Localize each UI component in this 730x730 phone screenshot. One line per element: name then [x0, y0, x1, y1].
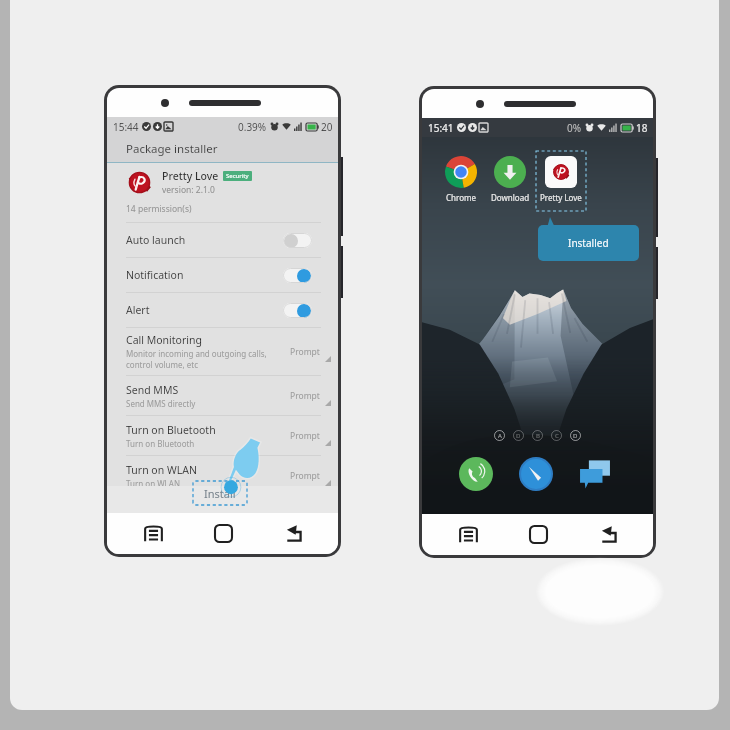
staticText: Prompt [290, 346, 320, 358]
staticText: C [555, 432, 559, 440]
staticText: Call Monitoring [126, 333, 202, 347]
staticText: Send MMS directly [126, 398, 196, 409]
button[interactable]: Browser [519, 457, 553, 491]
staticText: Monitor incoming and outgoing calls, [126, 348, 267, 359]
staticText: Pretty Love [540, 192, 582, 203]
staticText: D [516, 432, 521, 440]
staticText: Turn on WLAN [126, 463, 197, 477]
button[interactable]: Menu [454, 520, 482, 548]
staticText: Turn on Bluetooth [126, 438, 195, 449]
staticText: Turn on Bluetooth [126, 423, 216, 437]
staticText: A [498, 432, 502, 440]
button[interactable]: Chrome [436, 151, 486, 211]
staticText: 14 permission(s) [126, 203, 192, 215]
button[interactable]: Messaging [578, 457, 612, 491]
button[interactable]: Menu [139, 519, 167, 547]
staticText: Download [491, 192, 530, 203]
staticText: Package installer [126, 141, 218, 157]
button[interactable]: Call Monitoring [107, 328, 338, 375]
staticText: Security [226, 172, 249, 180]
button[interactable]: Back [280, 519, 308, 547]
staticText: 0.39% [238, 120, 267, 134]
button[interactable]: Turn on WLAN [107, 456, 338, 495]
staticText: Chrome [446, 192, 476, 203]
staticText: Pretty Love [162, 169, 219, 183]
button[interactable]: Notification [107, 258, 338, 292]
staticText: Install [204, 486, 236, 501]
staticText: version: 2.1.0 [162, 184, 215, 196]
button[interactable]: Pretty Love [536, 151, 586, 211]
button[interactable]: Turn on Bluetooth [107, 416, 338, 455]
staticText: Turn on WLAN [126, 478, 181, 489]
staticText: Send MMS [126, 383, 179, 397]
button[interactable]: Back [595, 520, 623, 548]
staticText: 20 [321, 120, 333, 134]
button[interactable]: Alert [107, 293, 338, 327]
staticText: D [573, 432, 578, 440]
button[interactable]: Home [209, 519, 237, 547]
staticText: B [536, 432, 540, 440]
staticText: Notification [126, 268, 184, 282]
staticText: 18 [636, 121, 648, 135]
staticText: Auto launch [126, 233, 186, 247]
button[interactable]: Phone [459, 457, 493, 491]
button[interactable]: Home [524, 520, 552, 548]
staticText: Prompt [290, 390, 320, 402]
button[interactable]: Download [485, 151, 535, 211]
button[interactable]: Install [193, 481, 247, 505]
staticText: Alert [126, 303, 150, 317]
staticText: 0% [567, 121, 582, 135]
staticText: Installed [568, 236, 609, 250]
button[interactable]: Auto launch [107, 223, 338, 257]
button[interactable]: Send MMS [107, 376, 338, 415]
staticText: Prompt [290, 430, 320, 442]
staticText: Prompt [290, 470, 320, 482]
staticText: control volume, etc [126, 359, 199, 370]
staticText: 15:44 [113, 120, 139, 134]
staticText: 15:41 [428, 121, 454, 135]
